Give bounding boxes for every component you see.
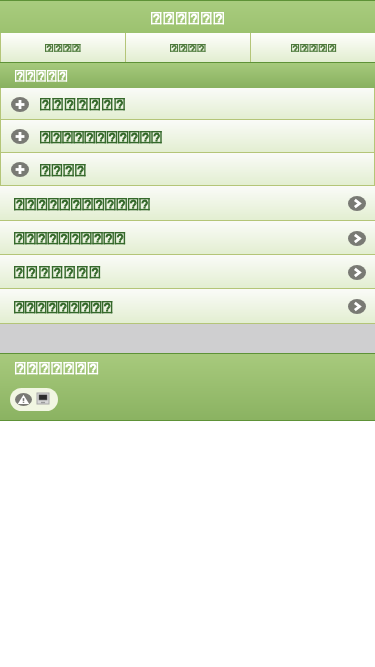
button[interactable]: Open: [0, 221, 375, 255]
button[interactable]: [251, 33, 375, 62]
other: Open: [348, 299, 366, 314]
button[interactable]: Open: [0, 186, 375, 221]
button[interactable]: Display: [37, 393, 49, 404]
button[interactable]: Warning: [15, 393, 32, 406]
other: Open: [348, 265, 366, 280]
button[interactable]: [126, 33, 250, 62]
button[interactable]: [0, 88, 375, 120]
button[interactable]: Open: [0, 289, 375, 324]
other: Open: [348, 231, 366, 246]
button[interactable]: [0, 153, 375, 186]
other: Open: [348, 196, 366, 211]
button[interactable]: Open: [0, 255, 375, 289]
button[interactable]: [0, 120, 375, 153]
button[interactable]: [1, 33, 125, 62]
